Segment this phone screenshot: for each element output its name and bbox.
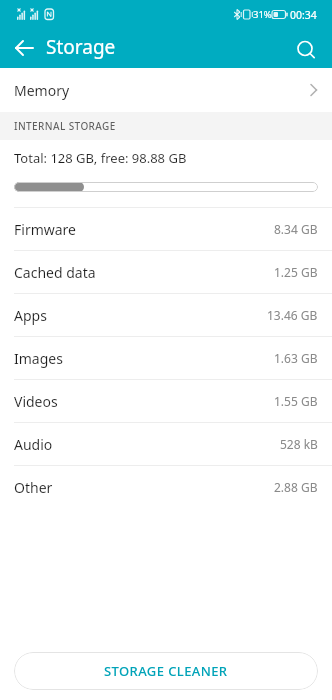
staticText: Videos (14, 392, 58, 411)
button[interactable]: Audio (0, 422, 332, 465)
button[interactable]: STORAGE CLEANER (14, 652, 318, 690)
staticText: Other (14, 478, 53, 497)
staticText: Apps (14, 306, 47, 325)
button[interactable]: Other (0, 465, 332, 508)
staticText: Storage (46, 34, 116, 60)
staticText: Memory (14, 81, 70, 100)
staticText: Firmware (14, 220, 77, 239)
staticText: 2.88 GB (274, 479, 318, 495)
staticText: 00:34 (290, 8, 317, 22)
staticText: 31% (253, 8, 272, 21)
staticText: Total: 128 GB, free: 98.88 GB (14, 149, 187, 167)
button[interactable]: Apps (0, 293, 332, 336)
button[interactable]: Cached data (0, 250, 332, 293)
button[interactable] (0, 28, 44, 68)
staticText: Cached data (14, 263, 96, 282)
button[interactable]: Firmware (0, 207, 332, 250)
staticText: STORAGE CLEANER (104, 662, 228, 680)
staticText: INTERNAL STORAGE (14, 119, 116, 133)
staticText: 1.55 GB (274, 393, 318, 409)
staticText: Audio (14, 435, 53, 454)
staticText: 8.34 GB (274, 221, 318, 237)
button[interactable]: Memory (0, 68, 332, 112)
staticText: Images (14, 349, 63, 368)
staticText: 1.63 GB (274, 350, 318, 366)
button[interactable] (288, 28, 332, 68)
staticText: 13.46 GB (267, 307, 318, 323)
staticText: 1.25 GB (274, 264, 318, 280)
staticText: 528 kB (280, 436, 318, 452)
button[interactable]: Images (0, 336, 332, 379)
button[interactable]: Videos (0, 379, 332, 422)
